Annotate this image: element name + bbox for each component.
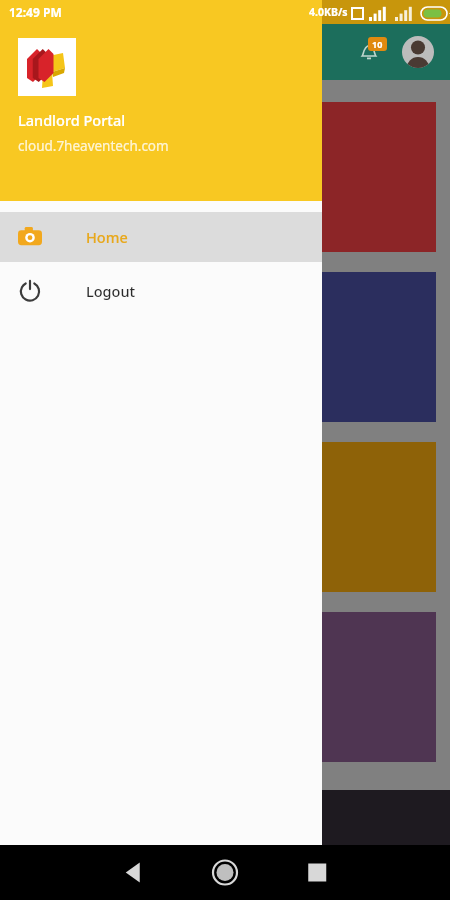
- button[interactable]: Notifications: [346, 29, 392, 75]
- staticText: Logout: [86, 281, 136, 301]
- button[interactable]: Profile: [396, 30, 440, 74]
- button[interactable]: 10: [14, 102, 436, 252]
- button[interactable]: 0: [14, 442, 436, 592]
- button[interactable]: 0: [14, 612, 436, 762]
- staticText: 12:49 PM: [9, 4, 62, 20]
- staticText: 10: [30, 184, 52, 210]
- button[interactable]: 0: [14, 272, 436, 422]
- button[interactable]: Home: [0, 212, 322, 262]
- staticText: 4.0KB/s: [309, 5, 348, 19]
- staticText: Home: [86, 227, 128, 247]
- staticText: 10: [372, 38, 383, 50]
- button[interactable]: Logout: [0, 262, 322, 320]
- button[interactable]: CHAT: [0, 790, 450, 845]
- staticText: cloud.7heaventech.com: [18, 137, 169, 155]
- staticText: Landlord Portal: [18, 110, 126, 130]
- staticText: NOTIFICATION: [30, 217, 117, 234]
